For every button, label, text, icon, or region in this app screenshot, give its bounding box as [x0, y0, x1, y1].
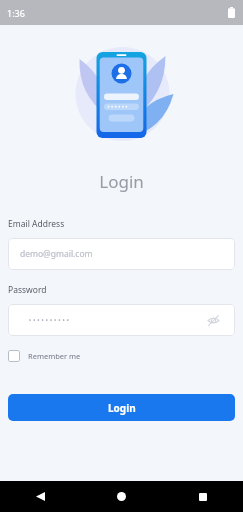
staticText: demo@gmail.com: [20, 248, 93, 260]
button[interactable]: Back: [0, 481, 81, 512]
button[interactable]: Recent apps: [162, 481, 243, 512]
button[interactable]: Show password: [8, 304, 235, 336]
staticText: Login: [108, 401, 136, 415]
button[interactable]: demo@gmail.com: [8, 238, 235, 270]
staticText: Login: [0, 170, 243, 193]
button[interactable]: Show password: [203, 310, 223, 330]
button[interactable]: Login: [8, 394, 235, 421]
staticText: 1:36: [7, 7, 25, 19]
button[interactable]: Remember me: [8, 348, 81, 364]
button[interactable]: Home: [81, 481, 162, 512]
staticText: Password: [8, 284, 47, 296]
staticText: Email Address: [8, 218, 65, 230]
staticText: Remember me: [28, 351, 81, 361]
